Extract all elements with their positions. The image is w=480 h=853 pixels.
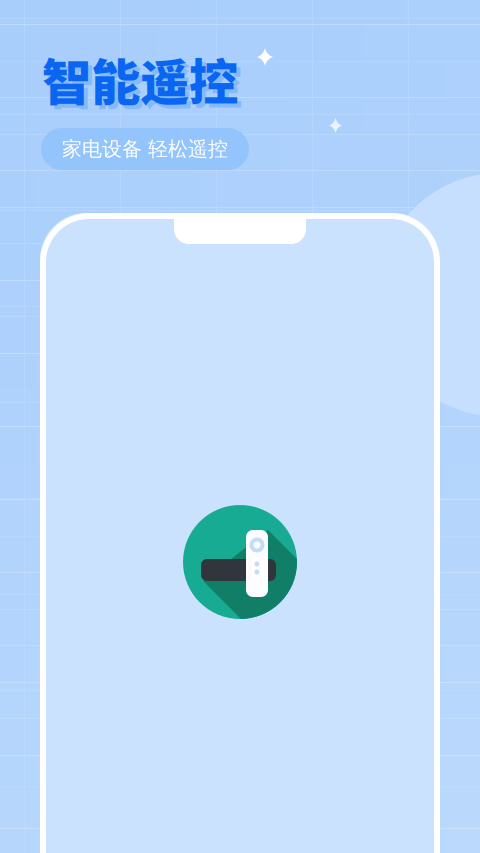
staticText: 家电设备 轻松遥控 bbox=[62, 137, 228, 161]
staticText: 智能遥控 bbox=[42, 43, 238, 114]
staticText: 智能遥控 bbox=[46, 47, 242, 118]
